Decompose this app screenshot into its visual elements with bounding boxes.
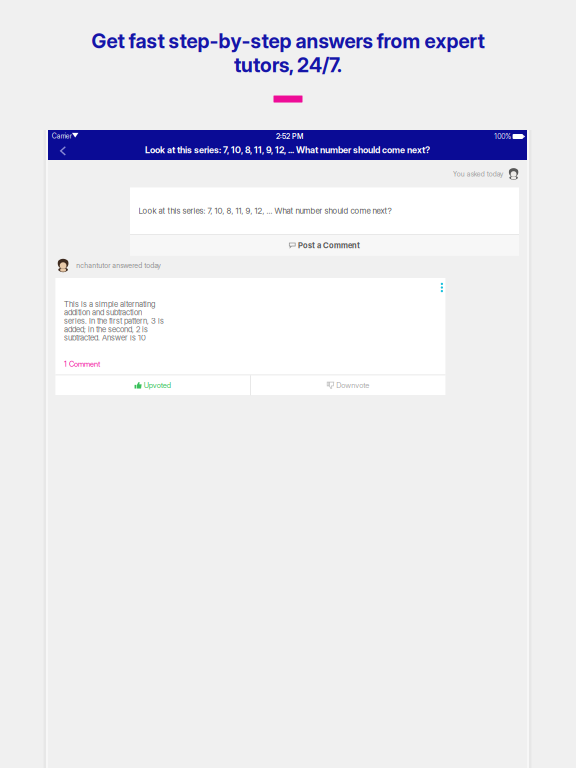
staticText: This is a simple alternating addition an… <box>64 299 164 342</box>
staticText: Upvoted <box>144 381 171 390</box>
staticText: Downvote <box>336 381 369 390</box>
button[interactable]: More options <box>435 279 449 295</box>
button[interactable]: Back <box>48 141 78 161</box>
staticText: Carrier <box>52 132 72 140</box>
staticText: 1 Comment <box>64 360 100 368</box>
staticText: tutors, 24/7. <box>234 53 342 77</box>
staticText: You asked today <box>453 170 504 178</box>
staticText: nchantutor answered today <box>76 261 161 270</box>
button[interactable]: Post a Comment <box>130 235 519 256</box>
staticText: 100% <box>494 132 511 141</box>
staticText: Post a Comment <box>298 241 360 250</box>
staticText: Look at this series: 7, 10, 8, 11, 9, 12… <box>138 206 391 216</box>
staticText: 2:52 PM <box>276 132 303 141</box>
button[interactable]: 1 Comment <box>64 358 124 369</box>
staticText: Look at this series: 7, 10, 8, 11, 9, 12… <box>145 144 430 155</box>
button[interactable]: Downvote <box>251 375 445 395</box>
button[interactable]: Upvoted <box>55 375 250 395</box>
staticText: Get fast step-by-step answers from exper… <box>91 29 484 53</box>
